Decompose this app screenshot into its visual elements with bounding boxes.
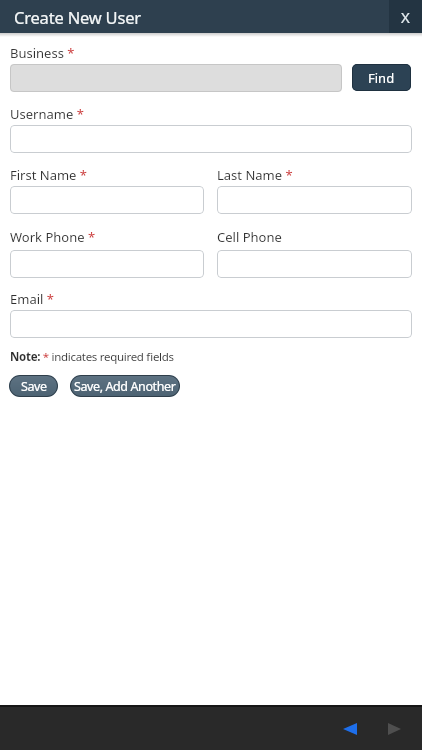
button[interactable] (10, 310, 412, 338)
staticText: X (401, 7, 410, 27)
staticText: Find (368, 69, 395, 87)
button[interactable] (10, 64, 342, 92)
staticText: Cell Phone (217, 228, 282, 246)
button[interactable]: X (389, 0, 422, 33)
staticText: Note: * indicates required fields (10, 349, 174, 365)
staticText: Username * (10, 105, 84, 123)
button[interactable] (217, 250, 412, 278)
staticText: Save, Add Another (74, 378, 176, 395)
button[interactable] (10, 125, 412, 153)
button[interactable]: Find (352, 64, 411, 91)
staticText: Email * (10, 290, 54, 308)
staticText: First Name * (10, 166, 87, 184)
button[interactable]: Save (9, 375, 58, 397)
staticText: Save (21, 378, 47, 395)
button[interactable] (338, 717, 364, 741)
button[interactable]: Save, Add Another (70, 375, 180, 397)
staticText: Create New User (14, 6, 141, 28)
button[interactable] (10, 186, 204, 214)
button[interactable] (217, 186, 412, 214)
staticText: Business * (10, 44, 75, 62)
button[interactable] (10, 250, 204, 278)
staticText: Last Name * (217, 166, 293, 184)
button[interactable] (383, 717, 409, 741)
staticText: Work Phone * (10, 228, 96, 246)
